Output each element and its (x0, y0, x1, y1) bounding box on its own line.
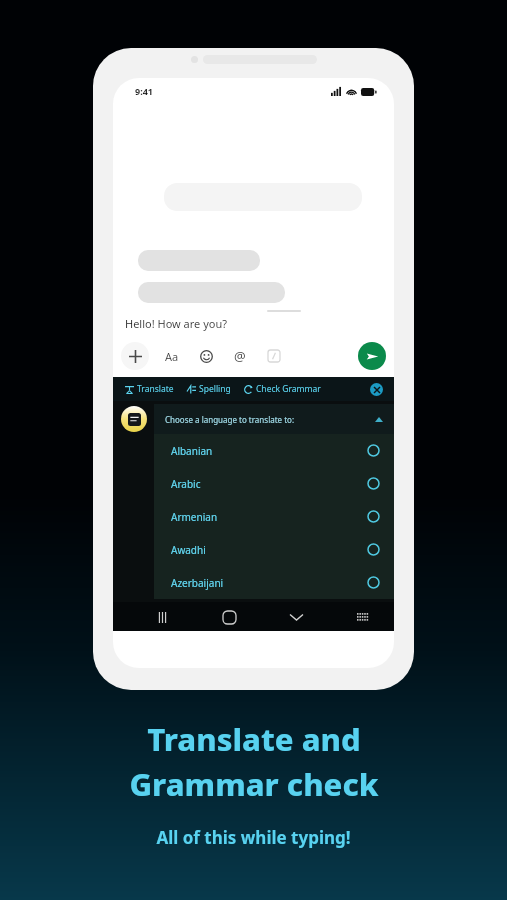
staticText: Hello! How are you? (125, 316, 227, 331)
button[interactable]: Emoji (193, 343, 219, 369)
button[interactable]: Back (283, 604, 309, 630)
staticText: Check Grammar (256, 383, 321, 395)
button[interactable]: Azerbaijani (154, 566, 394, 599)
button[interactable]: Recents (149, 604, 175, 630)
staticText: Aa (165, 349, 179, 364)
button[interactable]: Add (121, 342, 149, 370)
button[interactable]: Close (370, 383, 383, 396)
staticText: Albanian (171, 444, 213, 458)
button[interactable]: Sticker (261, 343, 287, 369)
button[interactable]: Check Grammar (244, 383, 321, 395)
button[interactable]: Arabic (154, 467, 394, 500)
staticText: Translate and (147, 718, 361, 760)
staticText: Choose a language to translate to: (165, 414, 295, 425)
staticText: Azerbaijani (171, 576, 224, 590)
button[interactable]: Send (358, 342, 386, 370)
button[interactable]: Awadhi (154, 533, 394, 566)
staticText: Spelling (199, 383, 231, 395)
button[interactable]: Mention (227, 343, 253, 369)
button[interactable]: Home (216, 604, 242, 630)
button[interactable]: Spelling (187, 383, 231, 395)
staticText: Awadhi (171, 543, 206, 557)
staticText: Grammar check (129, 763, 379, 805)
button[interactable]: Armenian (154, 500, 394, 533)
staticText: Arabic (171, 477, 201, 491)
staticText: 9:41 (135, 85, 153, 97)
button[interactable]: Format text (159, 343, 185, 369)
staticText: All of this while typing! (156, 826, 351, 849)
staticText: Armenian (171, 510, 218, 524)
button[interactable]: Translate app (121, 406, 147, 432)
button[interactable]: Choose a language to translate to: (154, 404, 394, 434)
staticText: @ (234, 347, 246, 365)
button[interactable]: Keyboard (350, 604, 376, 630)
button[interactable]: Albanian (154, 434, 394, 467)
staticText: Translate (137, 383, 174, 395)
button[interactable]: Translate (125, 383, 174, 395)
